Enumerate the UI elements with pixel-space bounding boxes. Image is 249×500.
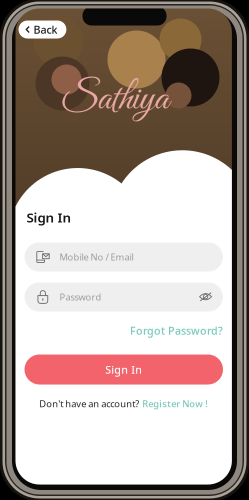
staticText: Don't have an account? <box>39 397 139 410</box>
staticText: Sathiya <box>60 74 168 125</box>
staticText: Back <box>33 22 57 37</box>
button[interactable]: Register Now ! <box>142 397 208 410</box>
button[interactable]: Show password <box>194 287 217 307</box>
button[interactable]: Forgot Password? <box>130 323 223 338</box>
staticText: Sign In <box>26 208 71 226</box>
button[interactable]: Sign In <box>24 354 223 384</box>
button[interactable]: Back <box>18 20 66 38</box>
staticText: Password <box>59 291 101 303</box>
staticText: Sign In <box>105 362 142 377</box>
staticText: Mobile No / Email <box>59 251 133 263</box>
staticText: Register Now ! <box>142 397 208 410</box>
staticText: Forgot Password? <box>130 323 223 338</box>
